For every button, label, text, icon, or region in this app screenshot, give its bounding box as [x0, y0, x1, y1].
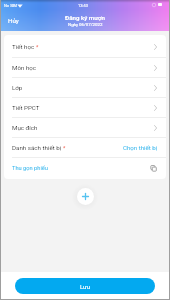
staticText: Thu gọn phiếu [12, 165, 48, 172]
staticText: Môn học [12, 64, 37, 71]
button[interactable]: Lưu [15, 278, 155, 294]
button[interactable]: Tiết học [4, 35, 166, 57]
button[interactable]: Danh sách thiết bị [4, 138, 166, 157]
staticText: Chọn thiết bị [123, 144, 158, 151]
staticText: Đăng ký mượn [65, 14, 105, 21]
button[interactable]: Môn học [4, 58, 166, 77]
button[interactable]: Mục đích [4, 118, 166, 137]
button[interactable]: Add [77, 188, 94, 205]
staticText: Lưu [80, 283, 91, 290]
staticText: Danh sách thiết bị [12, 144, 62, 151]
staticText: Tiết học [12, 43, 35, 50]
button[interactable]: Lớp [4, 78, 166, 97]
staticText: Mục đích [12, 124, 38, 131]
staticText: 13:53 [78, 3, 88, 8]
button[interactable]: Tiết PPCT [4, 98, 166, 117]
staticText: Ngày 06/07/2022 [68, 22, 103, 27]
button[interactable]: Copy [149, 164, 158, 173]
staticText: * [63, 145, 66, 151]
button[interactable]: Hủy [4, 14, 23, 27]
staticText: Tiết PPCT [12, 104, 40, 111]
staticText: No SIM [4, 3, 18, 8]
staticText: Lớp [12, 84, 23, 91]
staticText: Hủy [8, 17, 19, 24]
button[interactable]: Thu gọn phiếu [12, 163, 48, 174]
staticText: * [36, 44, 39, 50]
